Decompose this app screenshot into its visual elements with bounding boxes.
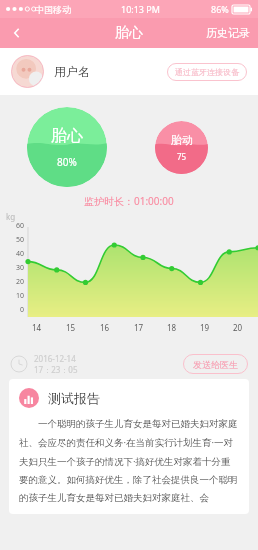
staticText: 14 bbox=[32, 322, 42, 333]
staticText: 0 bbox=[4, 305, 24, 315]
staticText: 20 bbox=[233, 322, 243, 333]
staticText: 测试报告 bbox=[48, 390, 100, 406]
staticText: 15 bbox=[66, 322, 76, 333]
staticText: 用户名 bbox=[54, 64, 90, 79]
staticText: 17：23：05 bbox=[34, 364, 78, 375]
staticText: 胎心 bbox=[115, 24, 143, 42]
button[interactable]: Back bbox=[0, 18, 34, 48]
staticText: 18 bbox=[167, 322, 177, 333]
staticText: 通过蓝牙连接设备 bbox=[175, 67, 239, 77]
staticText: 60 bbox=[4, 221, 24, 231]
button[interactable]: 胎动 bbox=[155, 121, 208, 174]
staticText: 胎动 bbox=[171, 133, 193, 147]
staticText: 19 bbox=[200, 322, 210, 333]
button[interactable]: 通过蓝牙连接设备 bbox=[167, 63, 247, 81]
staticText: 10 bbox=[4, 291, 24, 301]
staticText: 2016-12-14 bbox=[34, 353, 76, 364]
button[interactable]: 历史记录 bbox=[198, 18, 258, 48]
staticText: 历史记录 bbox=[206, 26, 250, 40]
staticText: 80% bbox=[57, 155, 77, 169]
staticText: 发送给医生 bbox=[193, 359, 238, 370]
staticText: 17 bbox=[134, 322, 144, 333]
button[interactable]: 发送给医生 bbox=[183, 354, 248, 374]
staticText: 75 bbox=[177, 151, 187, 162]
button[interactable]: 测试报告 bbox=[9, 379, 249, 514]
staticText: 胎心 bbox=[51, 126, 83, 146]
staticText: 20 bbox=[4, 277, 24, 287]
staticText: 10:13 PM bbox=[121, 3, 160, 15]
staticText: 50 bbox=[4, 235, 24, 245]
staticText: 一个聪明的孩子生儿育女是每对已婚夫妇对家庭社、会应尽的责任和义务·在当前实行计划… bbox=[19, 417, 239, 504]
staticText: 16 bbox=[100, 322, 110, 333]
staticText: kg bbox=[6, 211, 16, 222]
staticText: 86% bbox=[211, 3, 229, 15]
button[interactable]: 胎心 bbox=[27, 107, 107, 187]
staticText: 中国移动 bbox=[35, 4, 71, 15]
staticText: 30 bbox=[4, 263, 24, 273]
staticText: 监护时长：01:00:00 bbox=[84, 194, 174, 208]
button[interactable]: Avatar bbox=[11, 55, 44, 88]
staticText: 40 bbox=[4, 249, 24, 259]
